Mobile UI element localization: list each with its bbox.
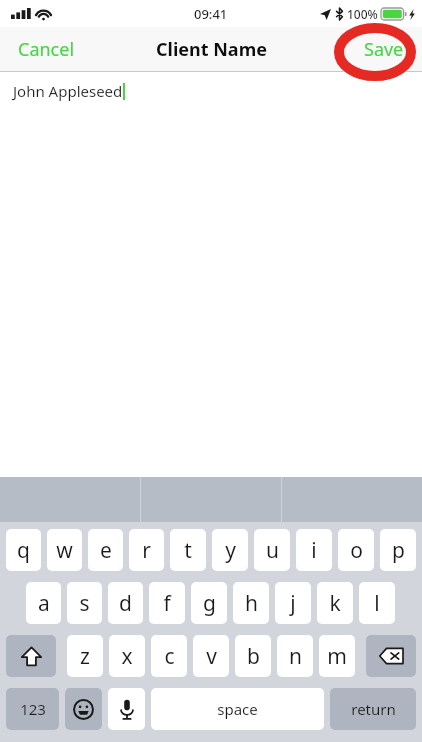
staticText: t: [184, 536, 192, 565]
button[interactable]: y: [212, 529, 248, 571]
staticText: u: [266, 536, 279, 565]
button[interactable]: h: [233, 582, 269, 624]
staticText: l: [374, 589, 380, 618]
button[interactable]: i: [296, 529, 332, 571]
button[interactable]: t: [170, 529, 206, 571]
button[interactable]: g: [191, 582, 227, 624]
staticText: a: [38, 589, 50, 618]
button[interactable]: o: [338, 529, 374, 571]
button[interactable]: f: [149, 582, 185, 624]
staticText: John Appleseed: [13, 81, 123, 101]
staticText: Save: [364, 37, 404, 62]
staticText: 09:41: [194, 5, 228, 23]
button[interactable]: return: [330, 688, 416, 730]
button[interactable]: John Appleseed: [13, 81, 125, 101]
staticText: q: [17, 536, 30, 565]
button[interactable]: z: [67, 635, 103, 677]
staticText: m: [327, 642, 347, 671]
button[interactable]: a: [26, 582, 61, 624]
staticText: b: [247, 642, 260, 671]
button[interactable]: Shift: [6, 635, 56, 677]
button[interactable]: u: [254, 529, 290, 571]
staticText: n: [289, 642, 302, 671]
staticText: z: [80, 642, 90, 671]
button[interactable]: space: [151, 688, 324, 730]
staticText: j: [290, 589, 296, 618]
staticText: space: [217, 699, 258, 719]
staticText: k: [329, 589, 341, 618]
staticText: o: [350, 536, 363, 565]
button[interactable]: n: [277, 635, 313, 677]
staticText: d: [119, 589, 132, 618]
button[interactable]: s: [67, 582, 102, 624]
button[interactable]: 123: [6, 688, 59, 730]
button[interactable]: Save: [358, 31, 410, 68]
staticText: 123: [20, 699, 46, 719]
button[interactable]: p: [380, 529, 416, 571]
button[interactable]: j: [275, 582, 311, 624]
staticText: e: [100, 536, 112, 565]
staticText: g: [203, 589, 216, 618]
staticText: c: [164, 642, 175, 671]
button[interactable]: e: [88, 529, 123, 571]
staticText: Client Name: [156, 37, 267, 62]
staticText: return: [351, 699, 396, 719]
button[interactable]: c: [151, 635, 187, 677]
staticText: w: [56, 536, 73, 565]
button[interactable]: w: [47, 529, 82, 571]
staticText: i: [311, 536, 317, 565]
button[interactable]: Dictation: [108, 688, 145, 730]
button[interactable]: l: [359, 582, 395, 624]
button[interactable]: r: [129, 529, 164, 571]
staticText: p: [392, 536, 405, 565]
staticText: Cancel: [18, 37, 75, 62]
button[interactable]: k: [317, 582, 353, 624]
staticText: s: [79, 589, 90, 618]
button[interactable]: x: [109, 635, 145, 677]
button[interactable]: d: [108, 582, 143, 624]
button[interactable]: m: [319, 635, 355, 677]
staticText: 100%: [347, 6, 378, 22]
staticText: r: [142, 536, 151, 565]
staticText: f: [163, 589, 171, 618]
staticText: x: [121, 642, 133, 671]
staticText: v: [206, 642, 217, 671]
button[interactable]: Backspace: [366, 635, 416, 677]
staticText: y: [225, 536, 236, 565]
staticText: h: [245, 589, 258, 618]
button[interactable]: q: [6, 529, 41, 571]
button[interactable]: v: [193, 635, 229, 677]
button[interactable]: Emoji keyboard: [65, 688, 102, 730]
button[interactable]: b: [235, 635, 271, 677]
button[interactable]: Cancel: [12, 31, 81, 68]
